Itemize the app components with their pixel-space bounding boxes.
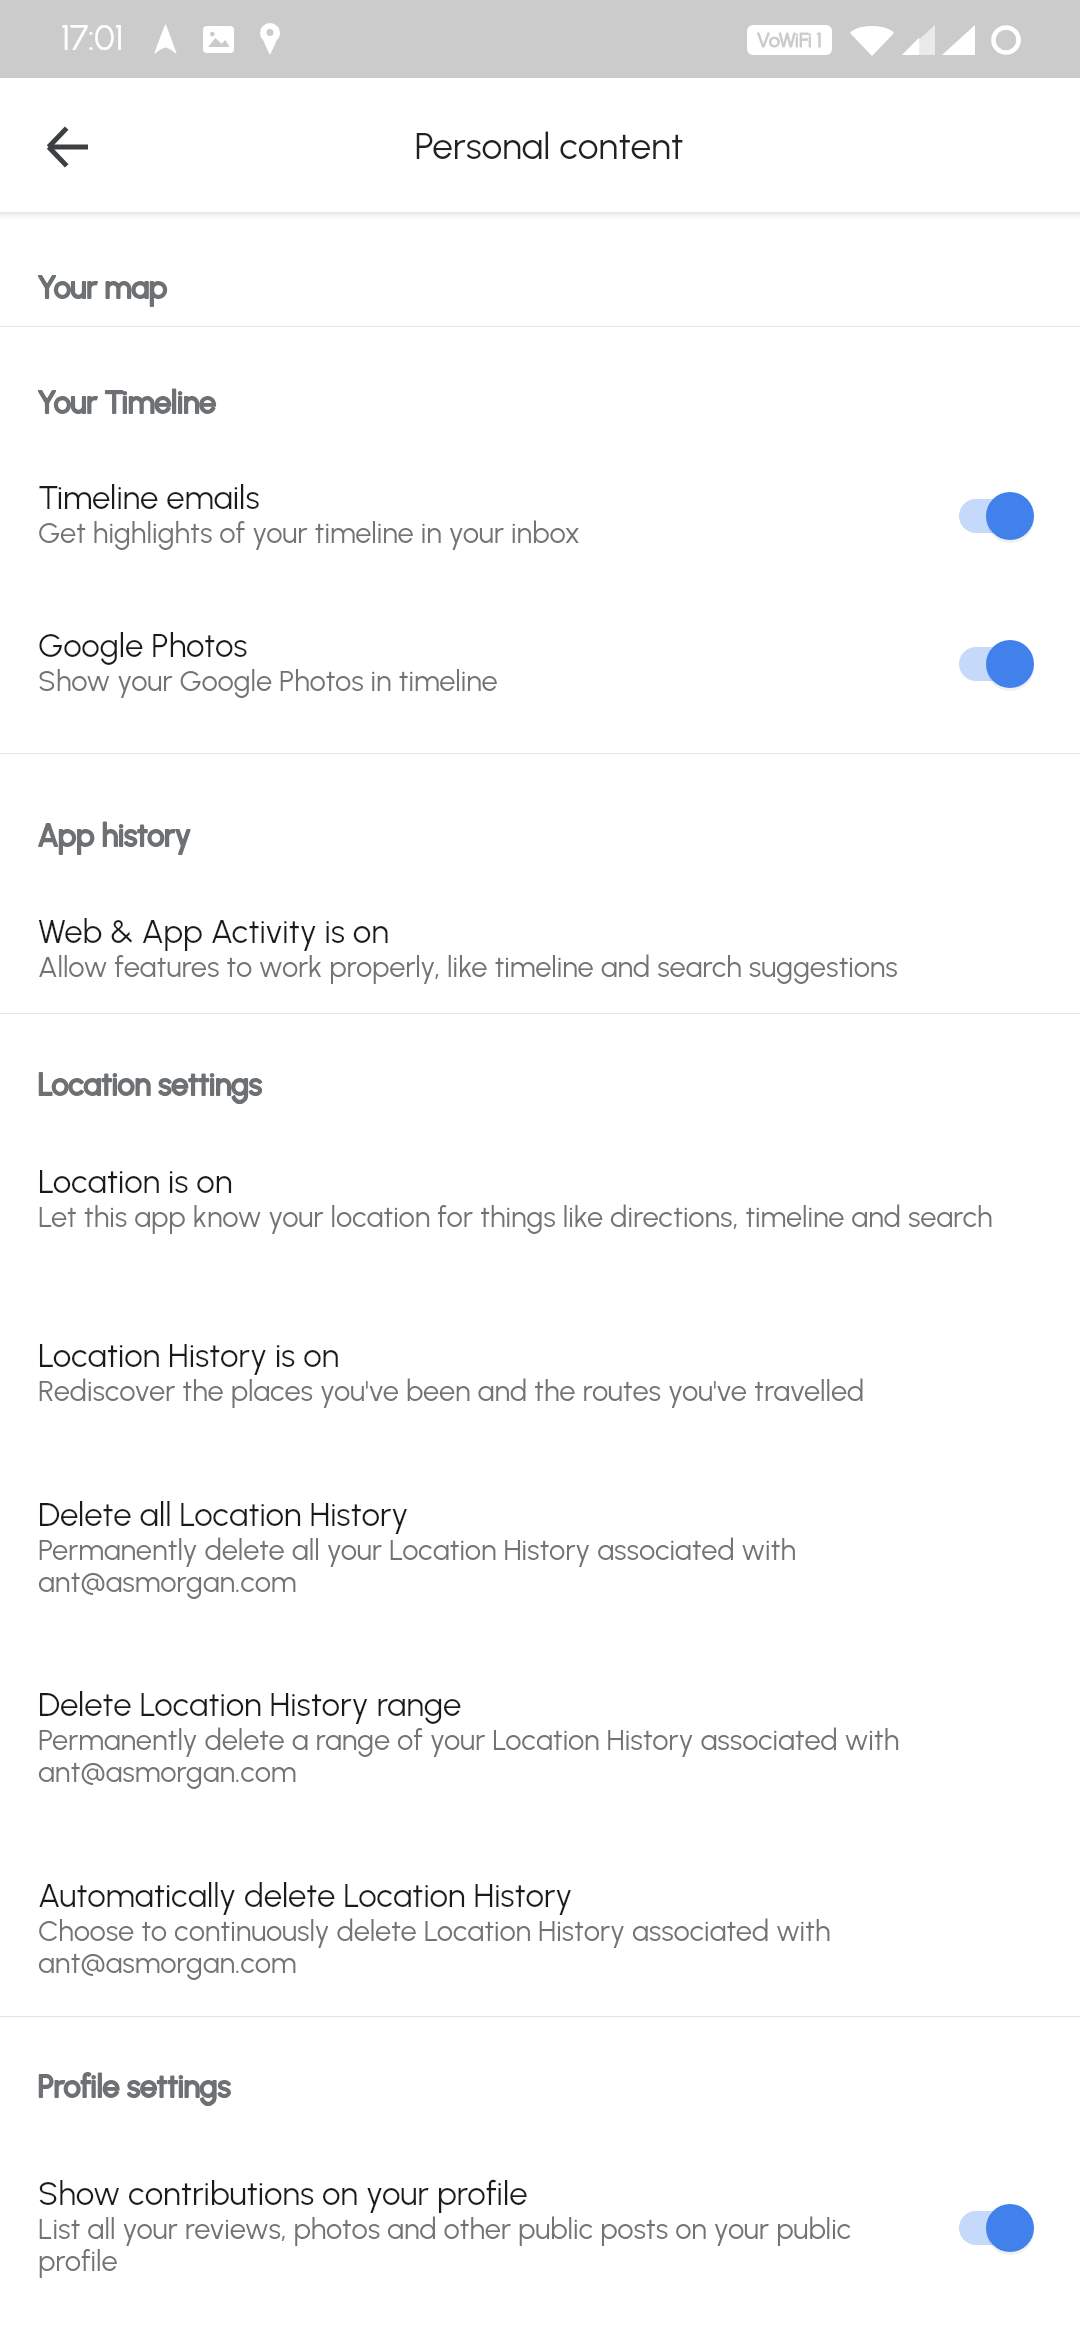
staticText: Profile settings [38,2068,231,2104]
button[interactable]: Automatically delete Location History [0,1876,1080,1983]
staticText: Show contributions on your profile [38,2174,528,2214]
staticText: Automatically delete Location History [38,1876,573,1916]
staticText: Google Photos [38,626,248,666]
staticText: App history [38,817,191,853]
staticText: Location History is on [38,1336,340,1376]
staticText: VoWiFi 1 [757,28,822,52]
staticText: Choose to continuously delete Location H… [38,1913,868,1980]
staticText: Your map [38,269,168,305]
staticText: Delete Location History range [38,1685,462,1725]
staticText: Permanently delete all your Location His… [38,1532,838,1599]
staticText: Location is on [38,1162,233,1202]
button[interactable]: Google Photos [0,626,1080,701]
staticText: Your Timeline [38,384,217,420]
staticText: 17:01 [61,18,124,59]
staticText: Delete all Location History [38,1495,409,1535]
staticText: Allow features to work properly, like ti… [38,949,898,984]
staticText: Your Timeline [38,384,217,420]
staticText: Location settings [38,1066,263,1102]
staticText: Timeline emails [38,478,260,518]
button[interactable]: Timeline emails [0,478,1080,553]
staticText: Show your Google Photos in timeline [38,663,498,698]
staticText: Your map [38,269,168,305]
staticText: Rediscover the places you've been and th… [38,1373,865,1408]
staticText: Permanently delete a range of your Locat… [38,1722,918,1789]
staticText: List all your reviews, photos and other … [38,2211,878,2278]
button[interactable]: Location History is on [0,1336,1080,1411]
staticText: Web & App Activity is on [38,912,389,952]
button[interactable]: Show contributions on your profile [0,2174,1080,2281]
button[interactable]: Delete all Location History [0,1495,1080,1602]
staticText: Get highlights of your timeline in your … [38,515,580,550]
staticText: Personal content [414,124,684,168]
button[interactable]: Web & App Activity is on [0,912,1080,987]
staticText: App history [38,817,191,853]
button[interactable]: Location is on [0,1162,1080,1237]
button[interactable]: Delete Location History range [0,1685,1080,1792]
staticText: Let this app know your location for thin… [38,1199,993,1234]
staticText: Location settings [38,1066,263,1102]
staticText: Profile settings [38,2068,231,2104]
button[interactable]: Back [18,97,114,193]
